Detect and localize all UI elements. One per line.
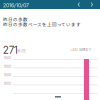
staticText: › bbox=[90, 0, 92, 9]
staticText: 1000 bbox=[4, 56, 11, 60]
staticText: 2016/10/07 bbox=[3, 2, 29, 8]
button[interactable]: Next day bbox=[87, 0, 96, 9]
staticText: 1000 bbox=[4, 64, 11, 69]
staticText: 昨日の歩数ペースを上回っています bbox=[3, 21, 81, 28]
staticText: 1000 bbox=[4, 81, 11, 86]
staticText: +241 目標まで bbox=[70, 47, 91, 52]
staticText: 歩/日 bbox=[17, 48, 26, 53]
staticText: 昨日の歩数 bbox=[3, 16, 28, 23]
button[interactable]: Previous day bbox=[74, 0, 83, 9]
staticText: 271 bbox=[3, 44, 18, 56]
staticText: 1000 bbox=[4, 73, 11, 77]
staticText: ‹ bbox=[77, 0, 79, 9]
